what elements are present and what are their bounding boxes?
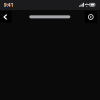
button[interactable]: Back: [0, 11, 11, 23]
staticText: 9:41: [3, 1, 13, 8]
button[interactable]: More options: [85, 11, 97, 23]
